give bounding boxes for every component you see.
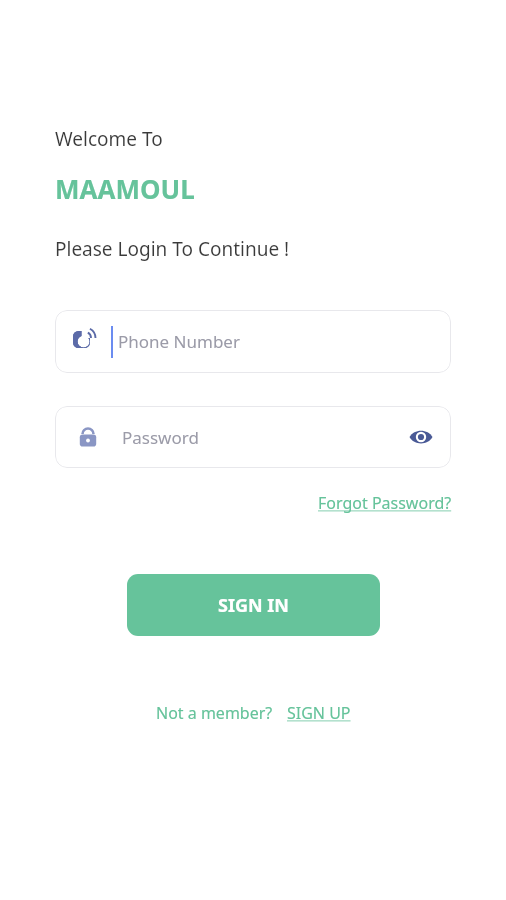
staticText: MAAMOUL — [55, 171, 195, 206]
staticText: Phone Number — [118, 330, 240, 353]
staticText: Password — [122, 426, 199, 449]
button[interactable]: Show password — [399, 415, 443, 459]
button[interactable]: SIGN IN — [127, 574, 380, 636]
staticText: Not a member? — [156, 702, 273, 724]
staticText: SIGN IN — [218, 593, 289, 618]
staticText: Welcome To — [55, 126, 163, 152]
button[interactable]: Phone Number — [55, 310, 451, 373]
staticText: Please Login To Continue ! — [55, 236, 290, 262]
button[interactable]: SIGN UP — [287, 702, 351, 724]
button[interactable]: Password — [55, 406, 451, 468]
button[interactable]: Forgot Password? — [318, 492, 452, 514]
